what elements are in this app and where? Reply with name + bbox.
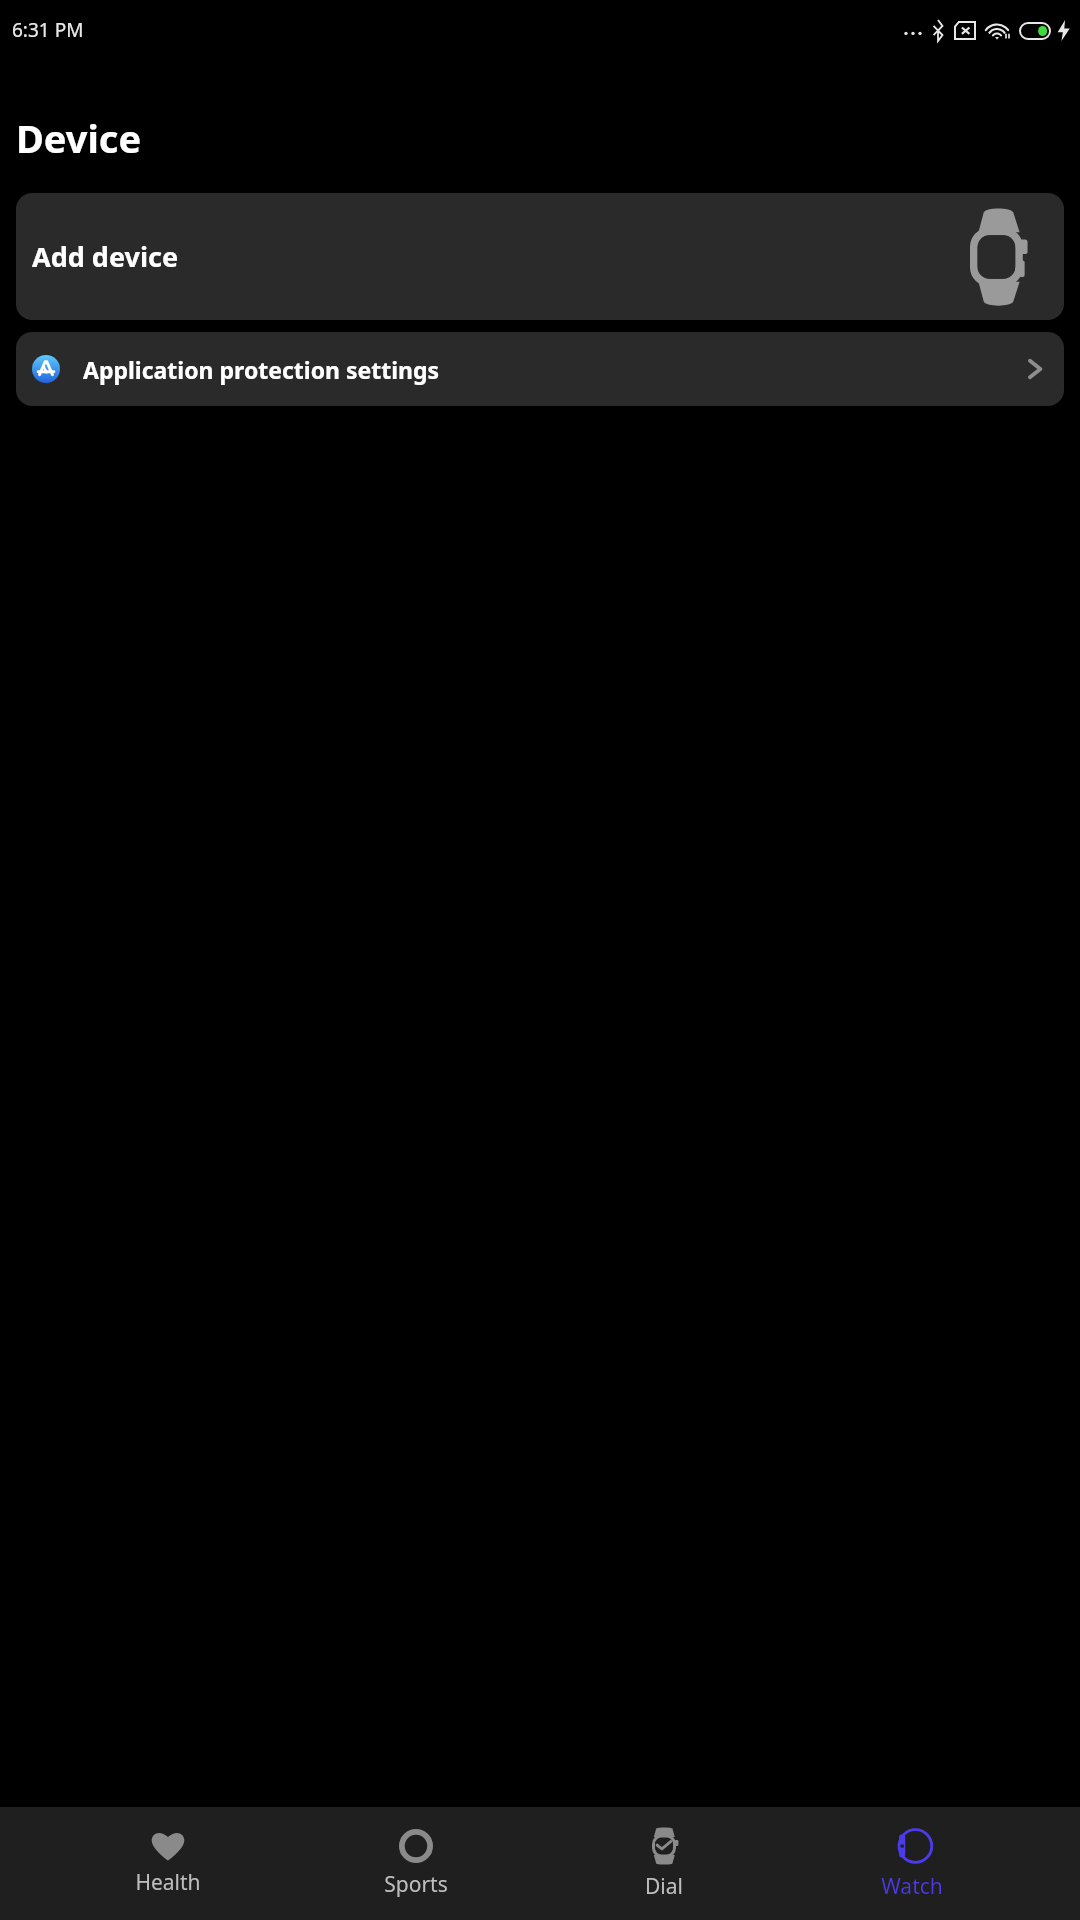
staticText: 6:31 PM <box>12 17 84 43</box>
staticText: Sports <box>384 1870 448 1899</box>
staticText: Add device <box>32 238 179 275</box>
other: Health <box>151 1831 185 1861</box>
staticText: Application protection settings <box>83 354 440 385</box>
staticText: Health <box>135 1868 201 1897</box>
staticText: Device <box>16 112 142 164</box>
button[interactable]: Add device <box>16 193 1064 320</box>
button[interactable]: Sports <box>336 1823 496 1905</box>
staticText: Dial <box>645 1872 683 1901</box>
button[interactable]: Application protection settings <box>16 332 1064 406</box>
button[interactable]: Watch <box>832 1821 992 1907</box>
button[interactable]: Health <box>88 1825 248 1903</box>
other: Sports <box>399 1829 433 1863</box>
staticText: Watch <box>881 1872 943 1901</box>
other: Watch <box>895 1827 929 1865</box>
button[interactable]: Dial <box>584 1821 744 1907</box>
other: Dial <box>649 1827 679 1865</box>
